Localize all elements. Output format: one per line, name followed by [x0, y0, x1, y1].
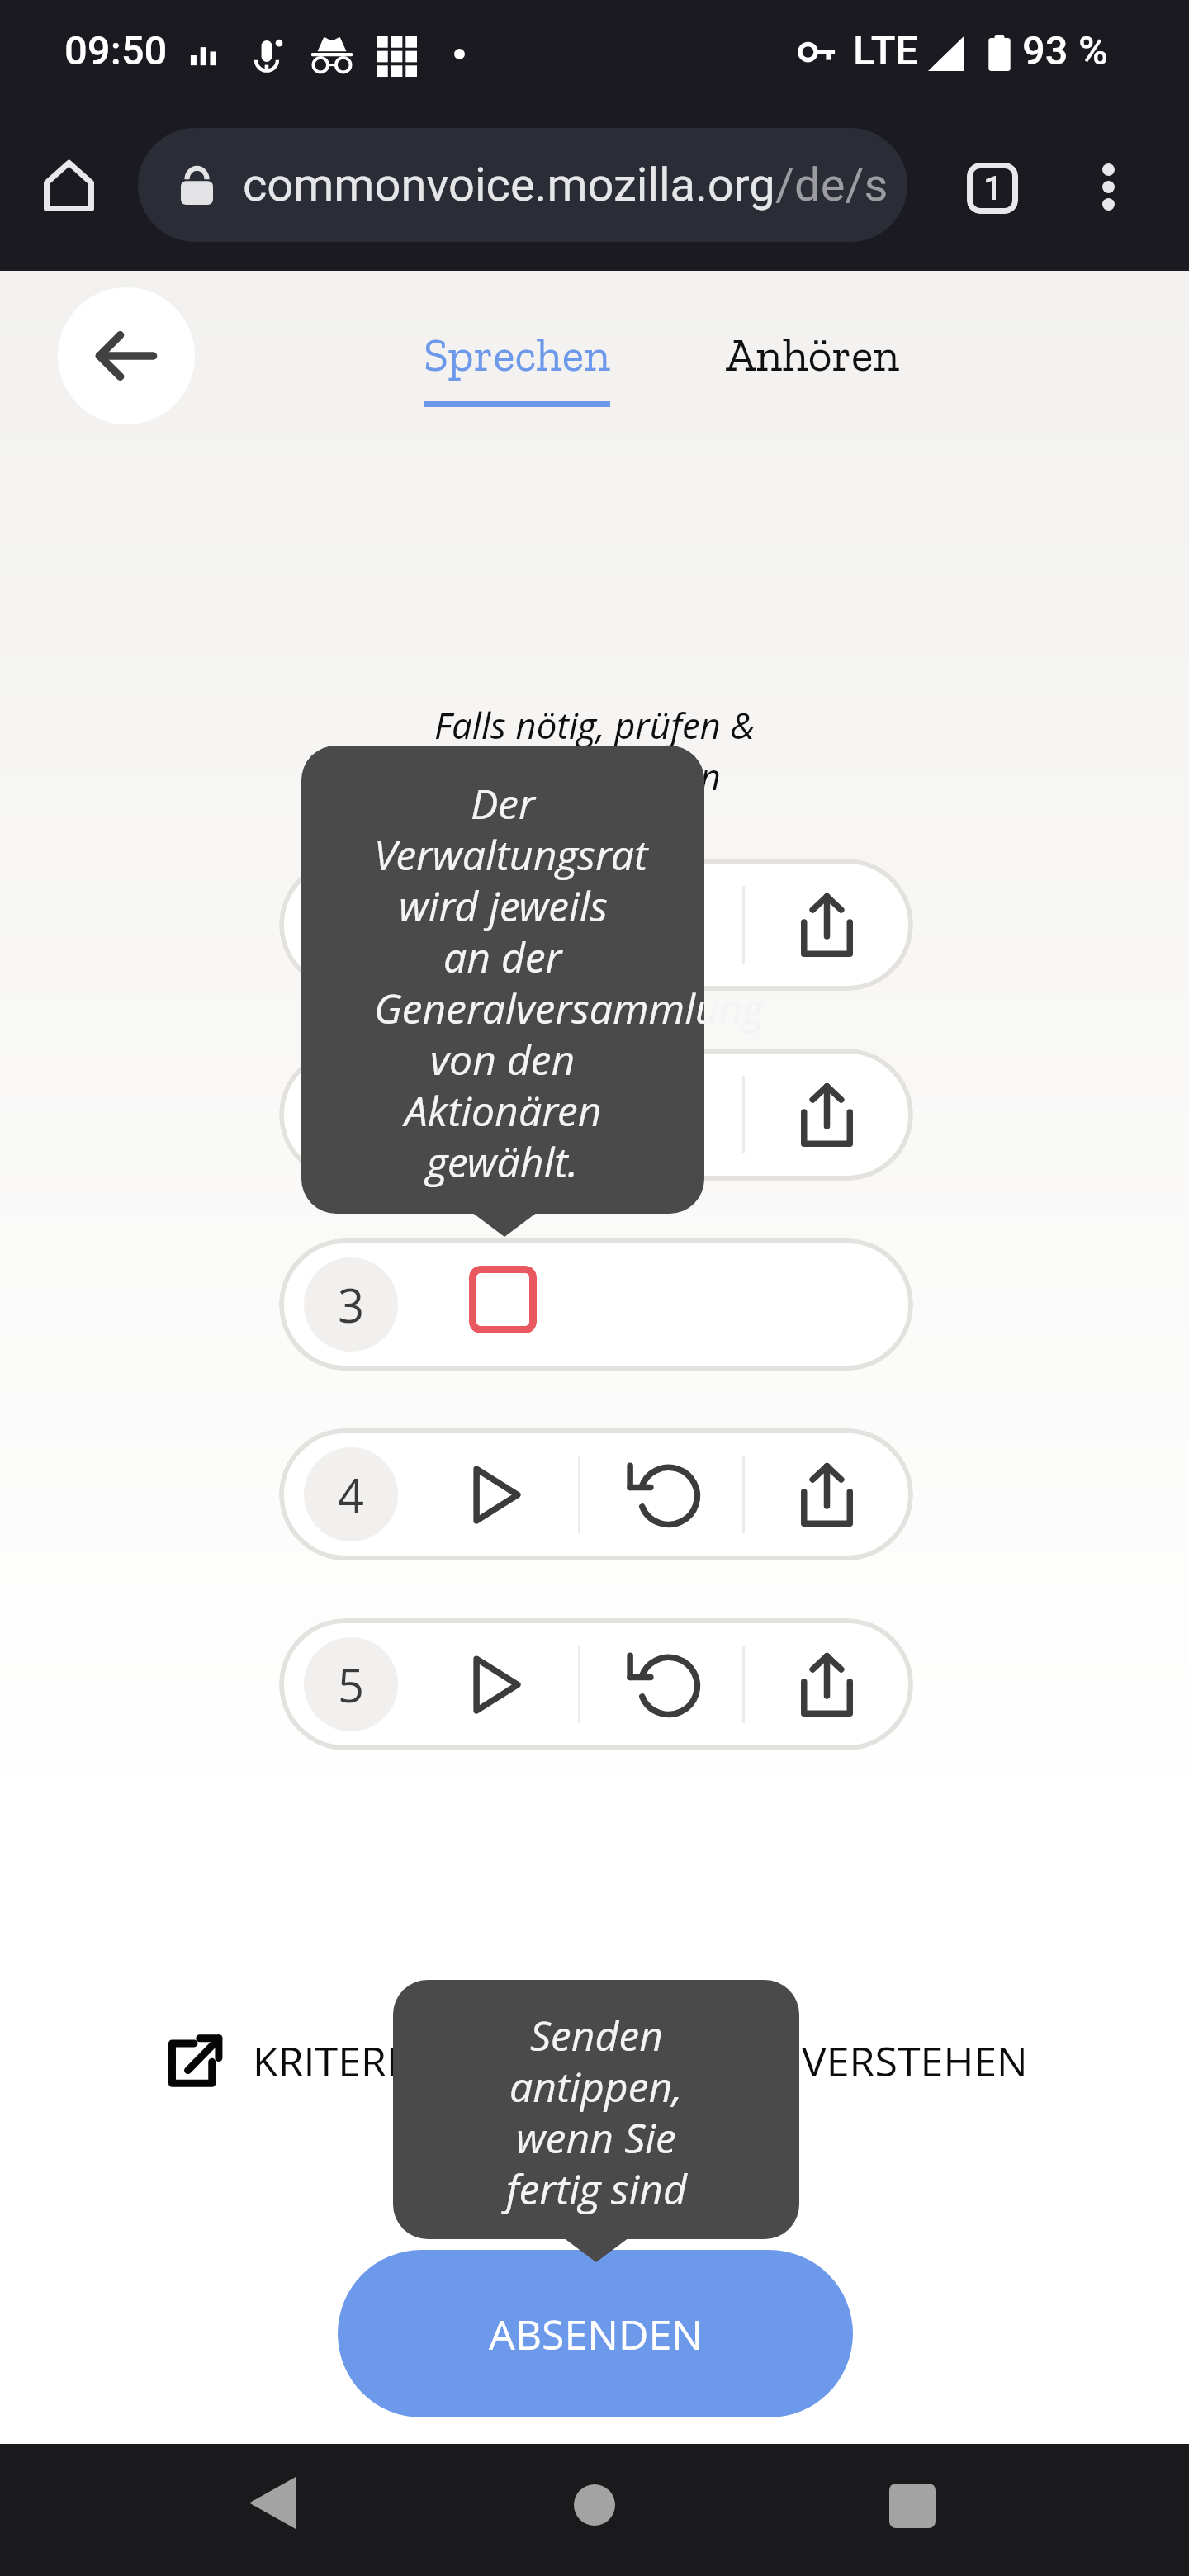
button[interactable]: 4	[279, 1428, 913, 1560]
button[interactable]: Anhören	[710, 327, 917, 418]
button[interactable]: More options	[1066, 144, 1150, 229]
staticText: Sprechen	[424, 327, 611, 382]
staticText: Aktionären	[405, 1082, 602, 1139]
button[interactable]: Upload	[760, 1618, 893, 1750]
staticText: LTE	[853, 27, 919, 74]
staticText: KRITERIEN	[253, 2033, 452, 2089]
button[interactable]: 3	[279, 1238, 913, 1371]
button[interactable]: 2	[279, 1049, 913, 1181]
button[interactable]: Back	[231, 2461, 314, 2544]
staticText: 09:50	[64, 27, 168, 74]
staticText: fertig sind	[506, 2161, 687, 2217]
button[interactable]: Re-record	[595, 859, 727, 991]
staticText: Verwaltungsrat	[374, 826, 648, 883]
staticText: Senden	[530, 2007, 663, 2063]
staticText: an der	[443, 929, 562, 985]
button[interactable]: Back	[58, 287, 195, 424]
button[interactable]: Stop recording	[437, 1238, 569, 1366]
button[interactable]: Upload	[760, 1049, 893, 1181]
button[interactable]: commonvoice.mozilla.org	[138, 128, 907, 242]
staticText: wenn Sie	[516, 2110, 676, 2166]
button[interactable]: Re-record	[595, 1428, 727, 1560]
staticText: 5	[338, 1653, 365, 1716]
button[interactable]: Re-record	[595, 1049, 727, 1181]
staticText: commonvoice.mozilla.org	[243, 158, 775, 212]
staticText: wird jeweils	[399, 878, 608, 934]
staticText: antippen,	[509, 2058, 683, 2114]
staticText: gewählt.	[427, 1134, 579, 1190]
button[interactable]: Play	[431, 1049, 563, 1181]
staticText: /de/s	[775, 158, 888, 212]
button[interactable]: VERSTEHEN	[794, 2021, 1035, 2100]
button[interactable]: Tabs	[950, 146, 1035, 230]
staticText: 4	[338, 1463, 365, 1526]
staticText: Generalversammlung	[374, 980, 764, 1036]
staticText: ABSENDEN	[489, 2306, 703, 2362]
button[interactable]: 5	[279, 1618, 913, 1750]
button[interactable]: ABSENDEN	[338, 2250, 853, 2417]
staticText: Falls nötig, prüfen & neu aufnehmen	[434, 700, 755, 801]
staticText: 1	[983, 169, 1002, 208]
button[interactable]: Sprechen	[413, 327, 628, 433]
button[interactable]: Upload	[760, 859, 893, 991]
button[interactable]: Play	[431, 1618, 563, 1750]
button[interactable]: Re-record	[595, 1618, 727, 1750]
button[interactable]: KRITERIEN	[166, 2021, 452, 2100]
button[interactable]: Upload	[760, 1428, 893, 1560]
staticText: Der	[471, 775, 535, 831]
staticText: VERSTEHEN	[802, 2033, 1028, 2089]
button[interactable]: Play	[431, 1428, 563, 1560]
button[interactable]: Home	[553, 2464, 636, 2546]
button[interactable]: Play	[431, 859, 563, 991]
staticText: von den	[430, 1031, 576, 1087]
button[interactable]: 1	[279, 859, 913, 991]
button[interactable]: Home	[26, 143, 111, 227]
staticText: Anhören	[726, 327, 900, 382]
staticText: 93 %	[1022, 27, 1108, 74]
button[interactable]: Recent apps	[871, 2465, 954, 2547]
staticText: 3	[338, 1273, 365, 1336]
